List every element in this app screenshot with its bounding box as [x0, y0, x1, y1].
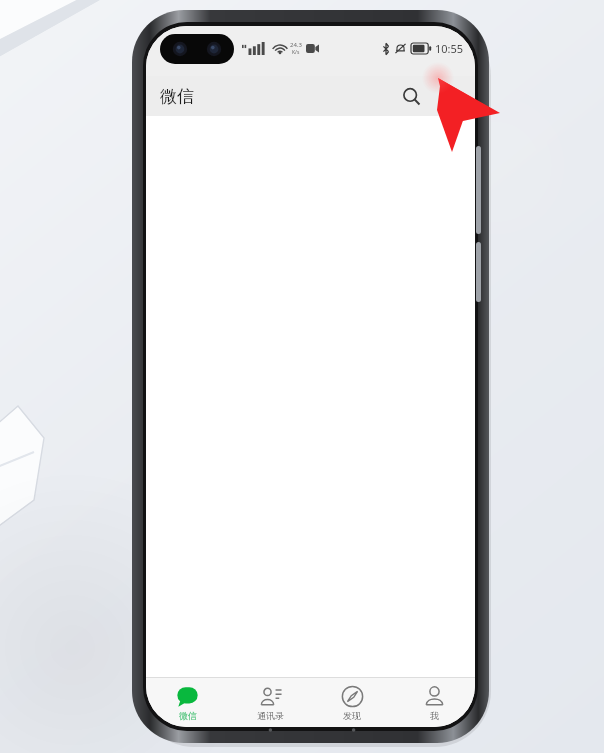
button[interactable]: 发现 [311, 678, 393, 727]
button[interactable]: 我 [393, 678, 475, 727]
button[interactable]: Search [395, 80, 427, 112]
staticText: 微信 [179, 710, 197, 721]
staticText: K/s [292, 49, 300, 56]
staticText: 24.3 [290, 41, 302, 49]
staticText: 10:55 [435, 41, 464, 56]
button[interactable]: 微信 [146, 678, 229, 727]
staticText: 我 [430, 710, 439, 721]
staticText: 微信 [160, 86, 194, 107]
staticText: 通讯录 [257, 710, 284, 721]
button[interactable]: Add [433, 80, 465, 112]
staticText: 发现 [343, 710, 361, 721]
button[interactable]: 通讯录 [229, 678, 311, 727]
